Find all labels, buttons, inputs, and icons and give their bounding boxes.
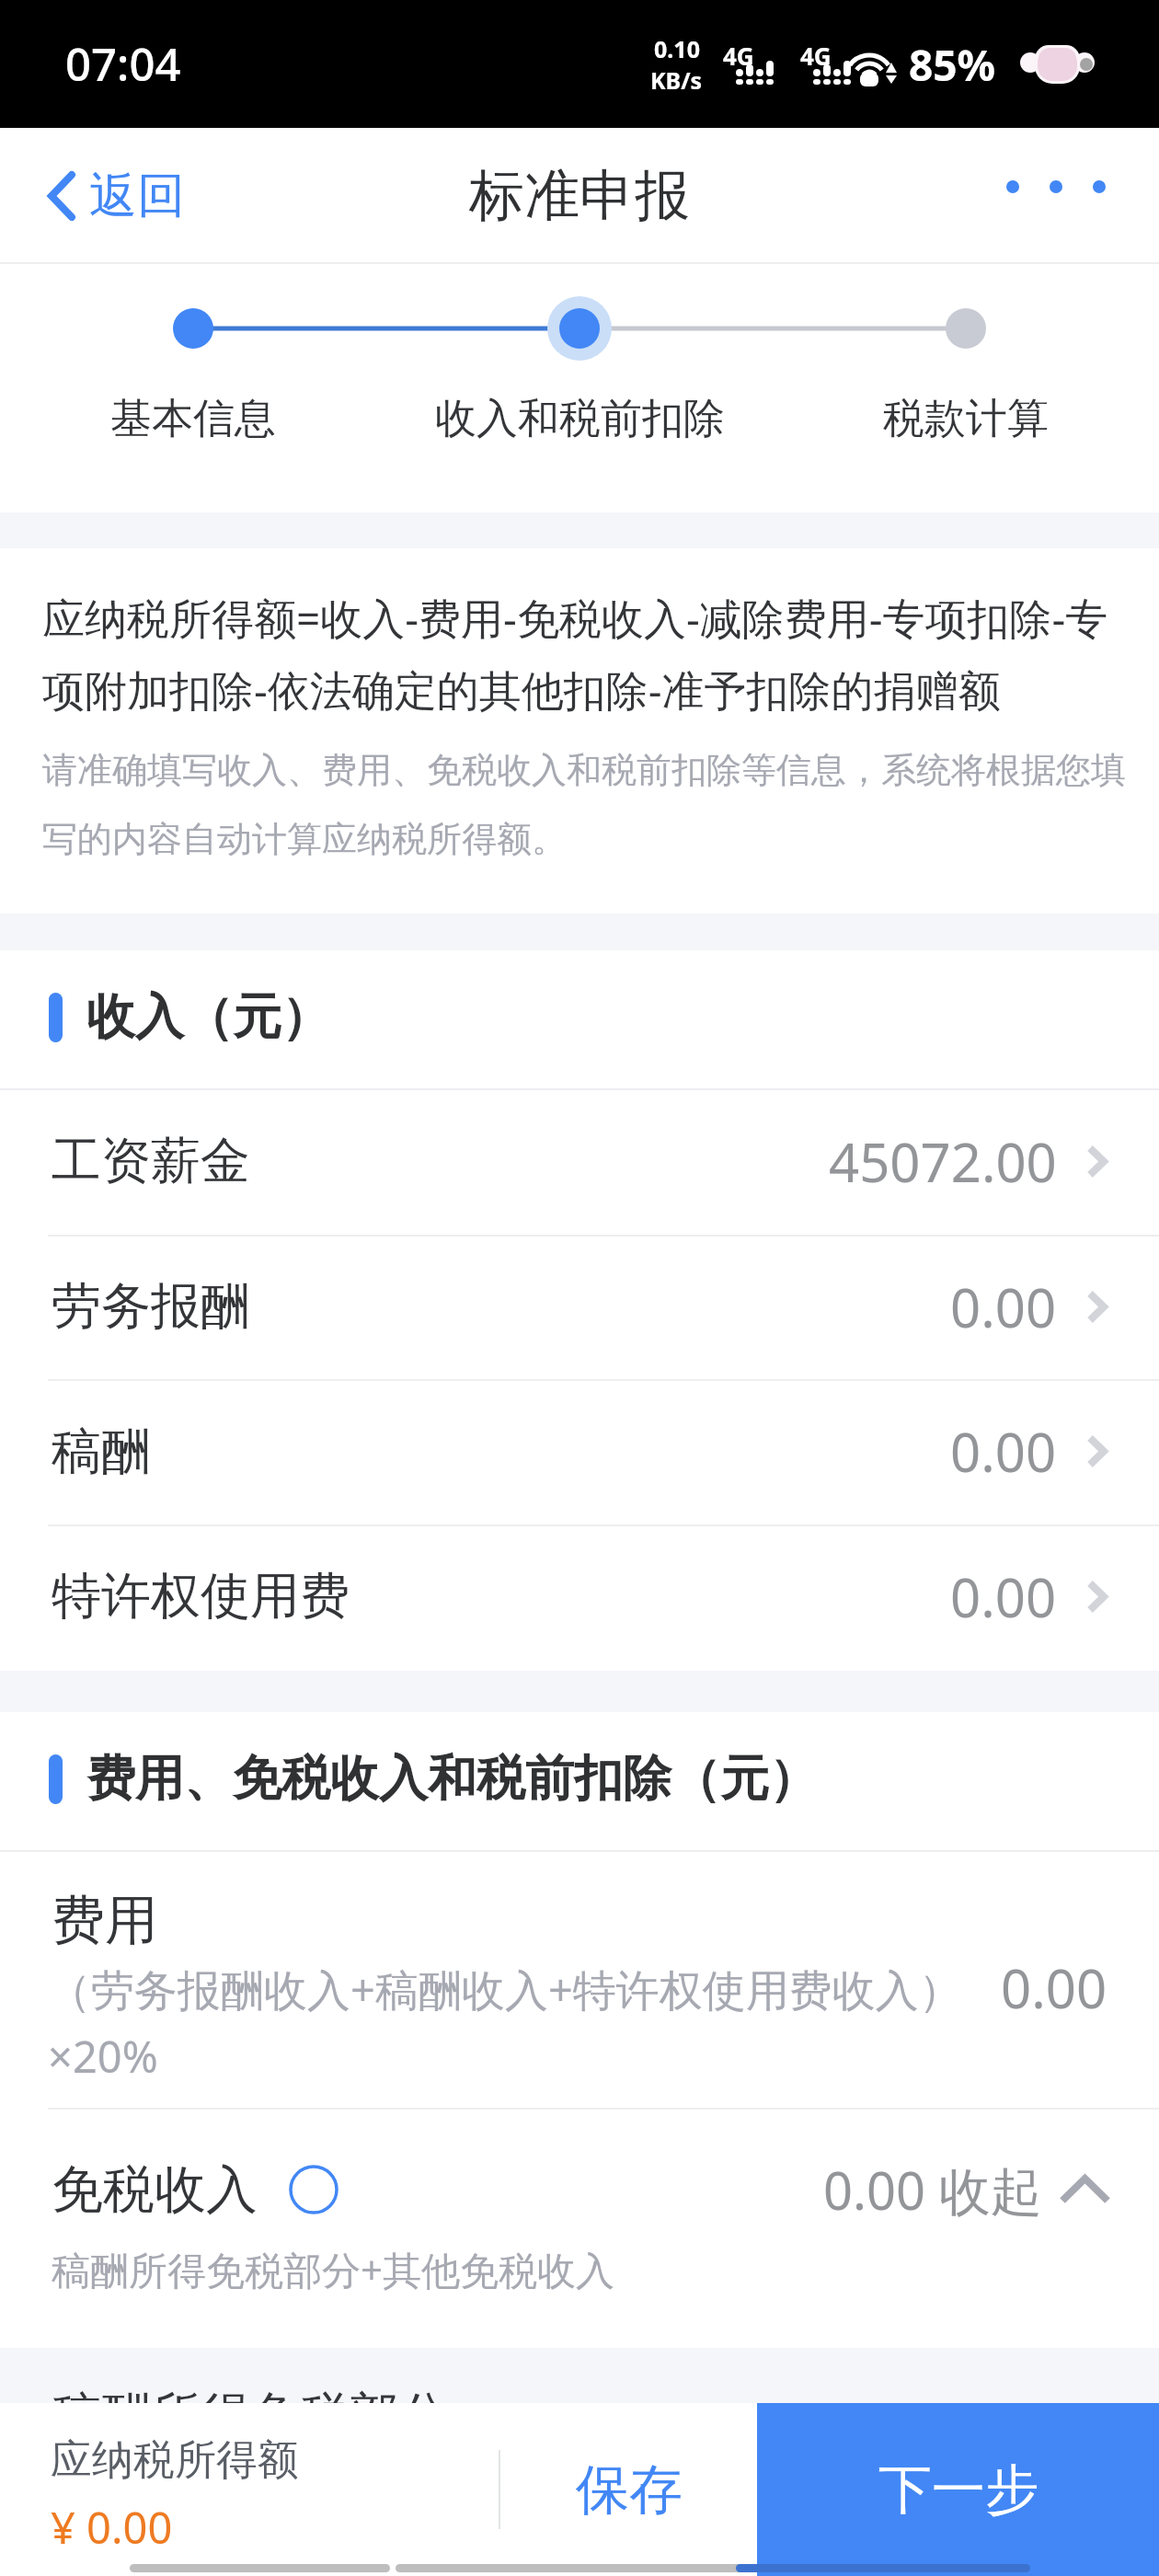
staticText: 0.00 xyxy=(950,1560,1057,1633)
button[interactable]: 费用 xyxy=(0,1852,1159,2110)
staticText: 税款计算 xyxy=(883,393,1049,445)
staticText: 请准确填写收入、费用、免税收入和税前扣除等信息，系统将根据您填写的内容自动计算应… xyxy=(42,748,1128,861)
button[interactable]: 免税收入 xyxy=(0,2110,1159,2348)
staticText: 费用 xyxy=(52,1887,158,1954)
staticText: 应纳税所得额 xyxy=(51,2434,299,2487)
staticText: 返回 xyxy=(89,166,185,226)
button[interactable]: 下一步 xyxy=(757,2403,1159,2576)
staticText: 85% xyxy=(909,36,996,94)
button[interactable]: 特许权使用费 xyxy=(0,1526,1159,1671)
staticText: ¥ 0.00 xyxy=(51,2498,173,2557)
staticText: 收入（元） xyxy=(86,986,330,1048)
staticText: 0.00 xyxy=(950,1271,1057,1343)
staticText: 0.00 xyxy=(1001,1951,1107,2024)
staticText: 收入和税前扣除 xyxy=(435,393,725,445)
staticText: 保存 xyxy=(576,2456,683,2524)
staticText: 07:04 xyxy=(65,33,181,95)
staticText: 基本信息 xyxy=(110,393,276,445)
button[interactable]: 工资薪金 xyxy=(0,1090,1159,1236)
button[interactable]: 稿酬 xyxy=(0,1381,1159,1526)
staticText: 稿酬所得免税部分 xyxy=(52,2385,449,2447)
staticText: 免税收入 xyxy=(52,2157,258,2223)
staticText: 0.00 xyxy=(950,1415,1057,1488)
button[interactable]: 返回 xyxy=(0,149,207,243)
staticText: KB/s xyxy=(650,64,703,96)
staticText: 稿酬所得免税部分+其他免税收入 xyxy=(52,2243,615,2295)
staticText: 工资薪金 xyxy=(52,1130,250,1192)
button[interactable]: 劳务报酬 xyxy=(0,1236,1159,1381)
staticText: 特许权使用费 xyxy=(52,1565,350,1627)
staticText: 0.10 xyxy=(654,33,700,64)
staticText: 标准申报 xyxy=(469,161,690,231)
staticText: 0.00 收起 xyxy=(823,2155,1042,2225)
staticText: 应纳税所得额=收入-费用-免税收入-减除费用-专项扣除-专项附加扣除-依法确定的… xyxy=(42,589,1128,719)
staticText: 劳务报酬 xyxy=(52,1275,250,1338)
staticText: 4G xyxy=(800,40,832,72)
staticText: 45072.00 xyxy=(829,1125,1057,1198)
staticText: 稿酬 xyxy=(52,1420,151,1483)
staticText: 费用、免税收入和税前扣除（元） xyxy=(86,1748,818,1810)
staticText: （劳务报酬收入+稿酬收入+特许权使用费收入）×20% xyxy=(48,1960,992,2086)
button[interactable]: 保存 xyxy=(500,2403,757,2576)
staticText: 4G xyxy=(723,40,754,72)
staticText: 下一步 xyxy=(878,2456,1039,2524)
button[interactable]: More options xyxy=(984,158,1159,234)
